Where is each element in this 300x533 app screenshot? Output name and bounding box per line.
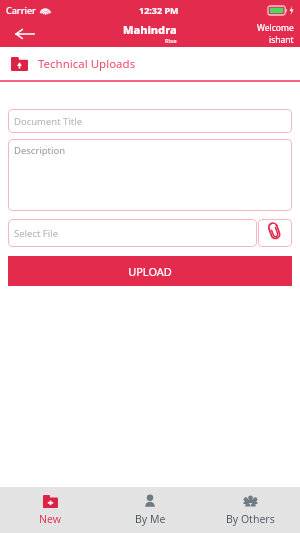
button[interactable]: Document Title xyxy=(8,109,292,133)
button[interactable]: New xyxy=(0,487,100,533)
button[interactable]: UPLOAD xyxy=(8,256,292,286)
staticText: Rise xyxy=(165,37,177,45)
staticText: ishant xyxy=(269,34,294,46)
staticText: New xyxy=(39,512,61,526)
staticText: Carrier xyxy=(6,4,36,16)
staticText: By Me xyxy=(135,512,166,526)
button[interactable]: By Others xyxy=(200,487,300,533)
button[interactable]: Select File xyxy=(8,219,257,247)
button[interactable]: Back xyxy=(0,20,50,47)
button[interactable]: Description xyxy=(8,139,292,211)
staticText: Document Title xyxy=(14,115,83,128)
staticText: By Others xyxy=(226,512,275,526)
button[interactable]: By Me xyxy=(100,487,200,533)
staticText: Description xyxy=(14,144,66,157)
button[interactable]: Welcome xyxy=(257,22,294,46)
staticText: 12:32 PM xyxy=(139,4,179,16)
staticText: UPLOAD xyxy=(128,264,172,279)
staticText: Welcome xyxy=(257,22,294,34)
staticText: Technical Uploads xyxy=(38,56,136,72)
staticText: Mahindra xyxy=(123,22,177,37)
button[interactable]: Attach file xyxy=(258,219,292,247)
staticText: Select File xyxy=(14,227,59,240)
